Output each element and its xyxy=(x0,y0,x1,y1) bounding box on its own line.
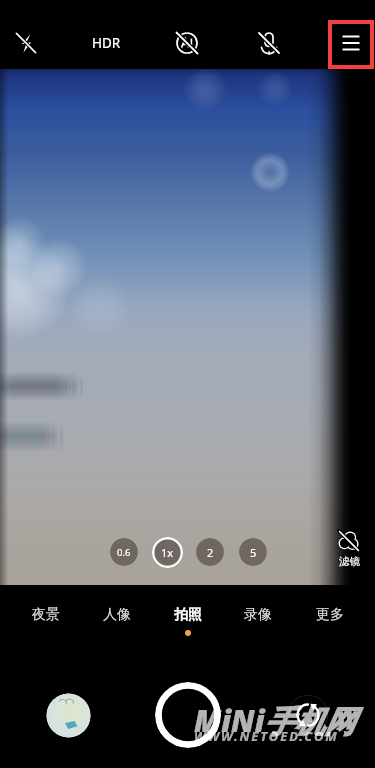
button[interactable]: Shutter xyxy=(155,682,221,748)
button[interactable]: Switch camera xyxy=(288,695,328,735)
button[interactable]: 滤镜 xyxy=(327,526,371,574)
staticText: 0.6 xyxy=(117,546,131,559)
staticText: 滤镜 xyxy=(339,555,360,568)
staticText: HDR xyxy=(92,34,121,52)
button[interactable]: Gallery xyxy=(46,693,91,738)
button[interactable]: AI scene detection off xyxy=(165,21,209,65)
button[interactable]: 夜景 xyxy=(18,602,74,642)
button[interactable]: 2 xyxy=(196,538,224,566)
button[interactable]: 人像 xyxy=(89,602,145,642)
staticText: MiNi手机网 xyxy=(194,700,355,741)
staticText: 1x xyxy=(161,545,174,560)
button[interactable]: 0.6 xyxy=(110,538,138,566)
staticText: 人像 xyxy=(103,606,131,624)
staticText: 5 xyxy=(250,545,257,560)
staticText: 2 xyxy=(207,545,214,560)
staticText: WWW.NETOED.COM xyxy=(194,727,339,745)
button[interactable]: 拍照 xyxy=(160,602,216,642)
staticText: 录像 xyxy=(244,606,272,624)
button[interactable]: 更多 xyxy=(302,602,358,642)
staticText: 夜景 xyxy=(32,606,60,624)
button[interactable]: 录像 xyxy=(230,602,286,642)
button[interactable]: 5 xyxy=(239,538,267,566)
button[interactable]: HDR xyxy=(84,21,128,65)
button[interactable]: Mic off xyxy=(247,21,291,65)
staticText: 拍照 xyxy=(174,606,202,624)
button[interactable]: 1x xyxy=(152,537,183,568)
button[interactable]: Menu xyxy=(329,21,373,65)
staticText: 更多 xyxy=(316,606,344,624)
button[interactable]: Flash off xyxy=(4,21,48,65)
